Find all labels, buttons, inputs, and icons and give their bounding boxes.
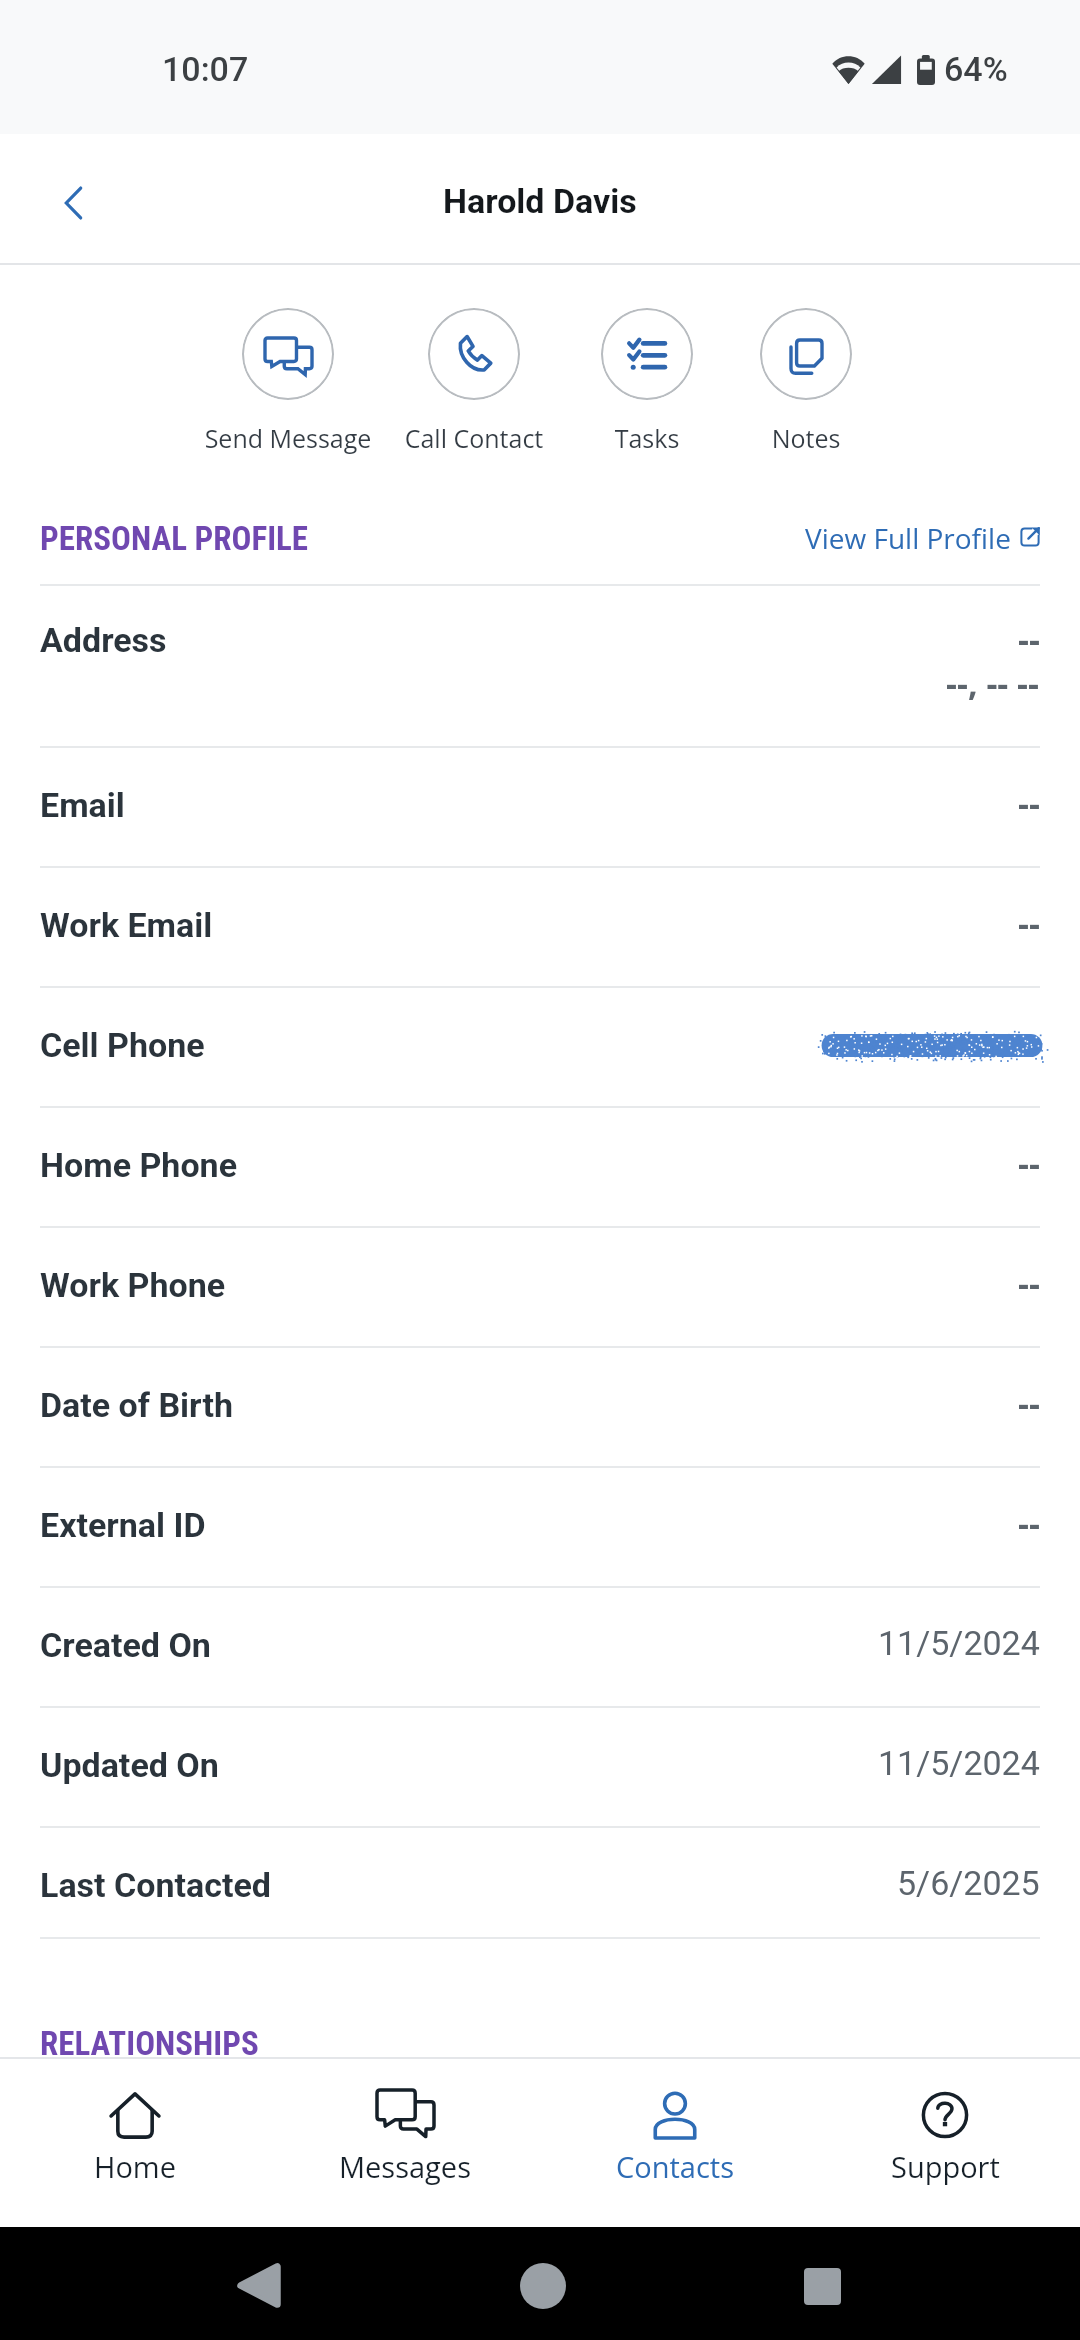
button[interactable]: Address [0, 584, 1080, 748]
staticText: Cell Phone [40, 1025, 205, 1065]
button[interactable]: Call Contact [388, 300, 560, 465]
staticText: Home Phone [40, 1145, 238, 1185]
staticText: Email [40, 785, 125, 825]
staticText: -- [1018, 1260, 1040, 1306]
button[interactable]: Home Phone [0, 1108, 1080, 1228]
button[interactable]: Recent apps [761, 2227, 881, 2340]
staticText: Work Email [40, 905, 213, 945]
staticText: Notes [728, 421, 884, 455]
staticText: 5/6/2025 [897, 1863, 1040, 1903]
button[interactable]: Notes [728, 300, 884, 465]
staticText: Call Contact [388, 421, 560, 455]
staticText: -- [1018, 1500, 1040, 1546]
button[interactable]: External ID [0, 1468, 1080, 1588]
staticText: Support [891, 2147, 1000, 2186]
staticText: 64% [944, 49, 1008, 89]
staticText: 10:07 [162, 49, 249, 89]
staticText: Date of Birth [40, 1385, 233, 1425]
button[interactable]: Work Email [0, 868, 1080, 988]
staticText: Contacts [616, 2147, 734, 2186]
staticText: RELATIONSHIPS [40, 2024, 259, 2063]
button[interactable]: Back [196, 2227, 316, 2340]
staticText: -- [1018, 900, 1040, 946]
staticText: -- [1018, 616, 1040, 662]
staticText: Harold Davis [443, 181, 637, 221]
button[interactable]: Cell Phone [0, 988, 1080, 1108]
staticText: Home [94, 2147, 176, 2186]
staticText: Updated On [40, 1745, 219, 1785]
staticText: Tasks [569, 421, 725, 455]
button[interactable]: View Full Profile [805, 519, 1040, 557]
staticText: -- [1018, 1380, 1040, 1426]
button[interactable]: Tasks [569, 300, 725, 465]
staticText: -- [1018, 1140, 1040, 1186]
button[interactable]: Date of Birth [0, 1348, 1080, 1468]
staticText: 11/5/2024 [878, 1743, 1040, 1783]
button[interactable]: Contacts [540, 2057, 810, 2227]
button[interactable]: Work Phone [0, 1228, 1080, 1348]
staticText: Last Contacted [40, 1865, 271, 1905]
button[interactable]: Support [810, 2057, 1080, 2227]
staticText: Created On [40, 1625, 211, 1665]
staticText: PERSONAL PROFILE [40, 519, 309, 558]
staticText: Work Phone [40, 1265, 226, 1305]
button[interactable]: Back [31, 161, 115, 245]
staticText: 11/5/2024 [878, 1623, 1040, 1663]
staticText: Messages [339, 2147, 471, 2186]
staticText: --, -- -- [946, 660, 1040, 706]
staticText: Address [40, 620, 167, 660]
button[interactable]: Messages [270, 2057, 540, 2227]
button[interactable]: Send Message [198, 300, 378, 465]
button[interactable]: Email [0, 748, 1080, 868]
staticText: View Full Profile [805, 519, 1011, 557]
staticText: Send Message [198, 421, 378, 455]
staticText: External ID [40, 1505, 206, 1545]
button[interactable]: Home [480, 2227, 600, 2340]
button[interactable]: Home [0, 2057, 270, 2227]
button[interactable]: Updated On [0, 1708, 1080, 1828]
button[interactable]: Last Contacted [0, 1828, 1080, 1939]
staticText: -- [1018, 780, 1040, 826]
button[interactable]: Created On [0, 1588, 1080, 1708]
